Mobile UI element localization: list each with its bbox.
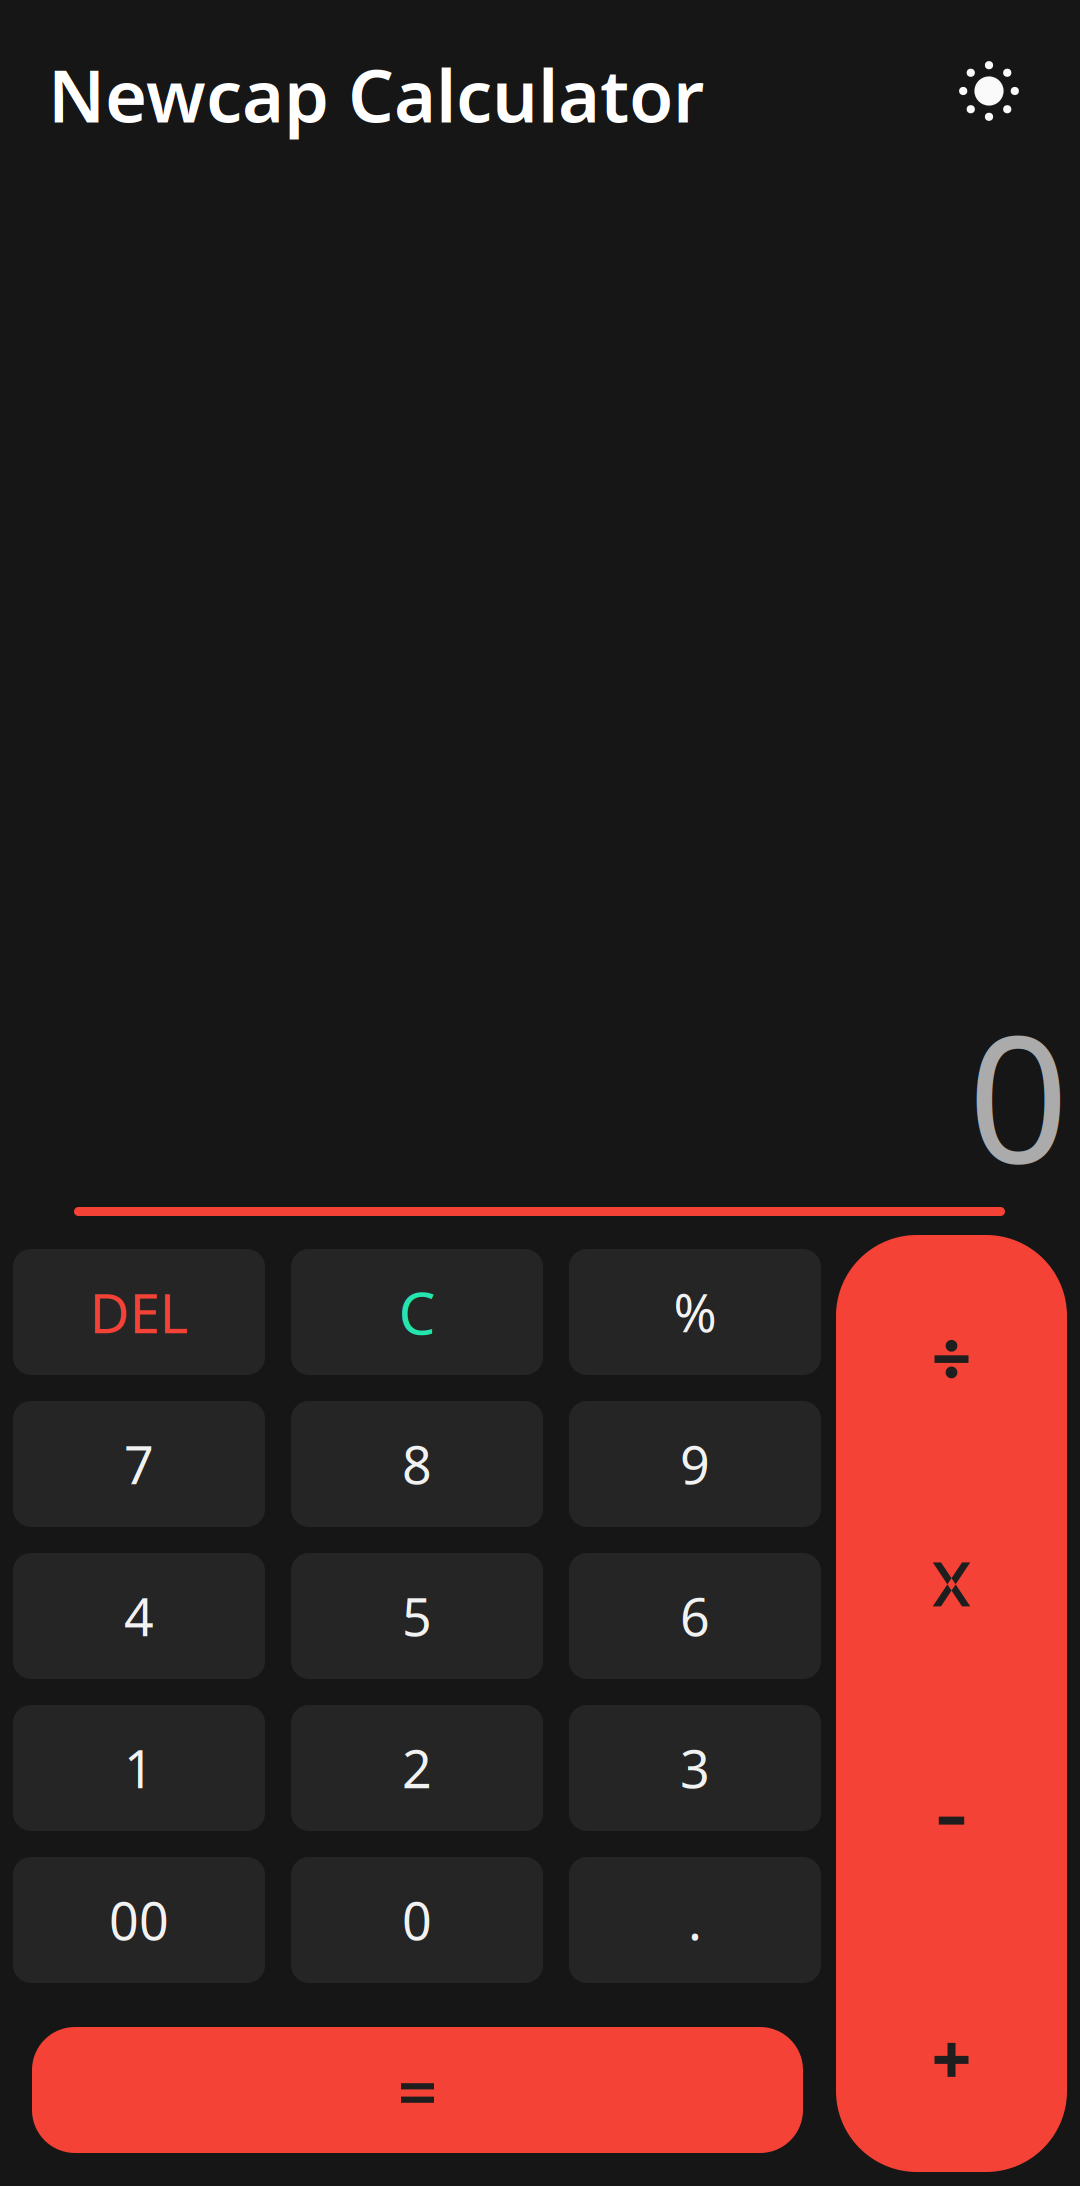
staticText: 00 bbox=[109, 1885, 169, 1955]
button[interactable]: 3 bbox=[569, 1705, 821, 1831]
button[interactable]: Subtract bbox=[836, 1703, 1067, 1938]
button[interactable]: Equals bbox=[32, 2027, 803, 2153]
staticText: 4 bbox=[124, 1581, 154, 1651]
button[interactable]: Multiply bbox=[836, 1469, 1067, 1703]
staticText: Newcap Calculator bbox=[48, 47, 704, 142]
staticText: 5 bbox=[402, 1581, 432, 1651]
button[interactable]: C bbox=[291, 1249, 543, 1375]
staticText: 0 bbox=[402, 1885, 432, 1955]
button[interactable]: 8 bbox=[291, 1401, 543, 1527]
button[interactable]: 0 bbox=[291, 1857, 543, 1983]
staticText: C bbox=[398, 1273, 435, 1351]
button[interactable]: 4 bbox=[13, 1553, 265, 1679]
staticText: . bbox=[688, 1885, 702, 1955]
button[interactable]: Divide bbox=[836, 1235, 1067, 1469]
staticText: 0 bbox=[968, 978, 1069, 1211]
staticText: 1 bbox=[124, 1733, 154, 1803]
button[interactable]: 7 bbox=[13, 1401, 265, 1527]
button[interactable]: % bbox=[569, 1249, 821, 1375]
button[interactable]: 6 bbox=[569, 1553, 821, 1679]
button[interactable]: 9 bbox=[569, 1401, 821, 1527]
button[interactable]: 2 bbox=[291, 1705, 543, 1831]
staticText: 2 bbox=[402, 1733, 432, 1803]
staticText: 8 bbox=[402, 1429, 432, 1499]
staticText: 7 bbox=[124, 1429, 154, 1499]
staticText: DEL bbox=[89, 1276, 188, 1348]
staticText: 6 bbox=[680, 1581, 710, 1651]
button[interactable]: Add bbox=[836, 1938, 1067, 2172]
staticText: 3 bbox=[680, 1733, 710, 1803]
button[interactable]: 5 bbox=[291, 1553, 543, 1679]
button[interactable]: . bbox=[569, 1857, 821, 1983]
button[interactable]: 00 bbox=[13, 1857, 265, 1983]
button[interactable]: Toggle brightness bbox=[958, 60, 1020, 122]
staticText: % bbox=[673, 1277, 716, 1347]
button[interactable]: 1 bbox=[13, 1705, 265, 1831]
button[interactable]: DEL bbox=[13, 1249, 265, 1375]
staticText: 9 bbox=[680, 1429, 710, 1499]
